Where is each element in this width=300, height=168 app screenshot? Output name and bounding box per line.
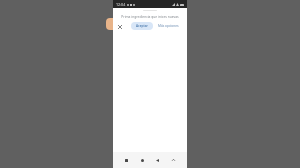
button[interactable]: Más opciones: [156, 22, 181, 30]
button[interactable]: Hide keyboard: [169, 156, 178, 165]
button[interactable]: Home: [138, 156, 147, 165]
button[interactable]: Aceptar: [131, 22, 153, 30]
staticText: Más opciones: [158, 24, 179, 28]
staticText: 12:04: [116, 2, 126, 7]
staticText: Prima ingrediencia que inices nuevas act…: [116, 14, 184, 18]
button[interactable]: Recent apps: [122, 156, 131, 165]
button[interactable]: Close: [116, 23, 123, 30]
staticText: Aceptar: [136, 24, 148, 28]
button[interactable]: Back: [153, 156, 162, 165]
